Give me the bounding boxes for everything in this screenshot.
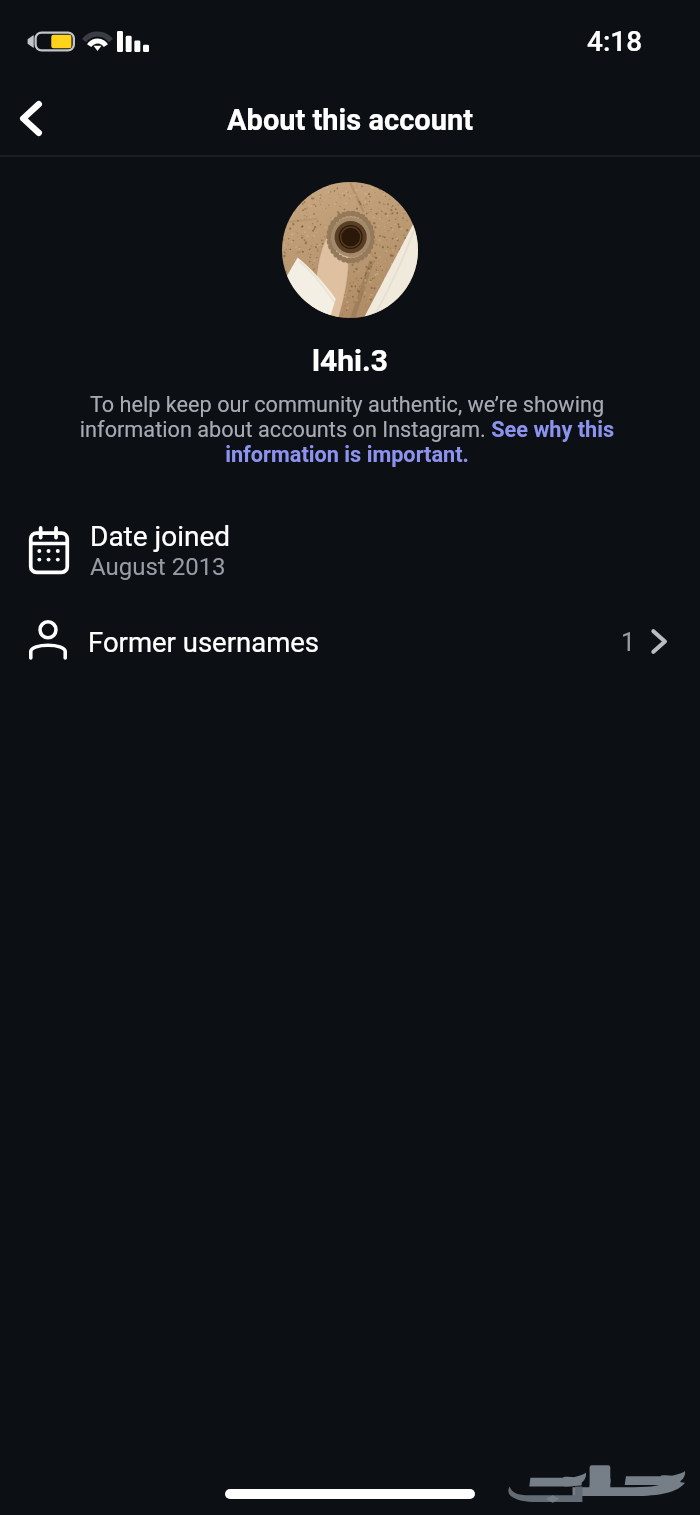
staticText: l4hi.3 — [0, 343, 700, 378]
staticText: About this account — [0, 103, 700, 137]
staticText: To help keep our community authentic, we… — [75, 392, 619, 467]
staticText: 1 — [621, 628, 636, 657]
button[interactable]: See why this information is important. — [222, 418, 614, 468]
staticText: August 2013 — [90, 553, 226, 581]
staticText: Former usernames — [88, 626, 621, 658]
staticText: 4:18 — [587, 25, 643, 58]
button[interactable]: Date joined — [0, 505, 700, 595]
staticText: Date joined — [90, 520, 231, 553]
button[interactable]: Former usernames — [0, 595, 700, 683]
button[interactable]: Back — [1, 88, 61, 148]
